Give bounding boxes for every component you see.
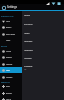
staticText: Touchpad xyxy=(24,23,33,25)
button[interactable]: Notific xyxy=(24,29,58,37)
staticText: Vibrate xyxy=(24,14,31,16)
button[interactable]: Data usage xyxy=(0,31,22,37)
button[interactable]: Settings xyxy=(0,4,64,10)
staticText: Hardware xyxy=(24,40,33,42)
staticText: More xyxy=(6,39,11,41)
staticText: Notific xyxy=(24,32,30,34)
staticText: Apps xyxy=(6,69,10,71)
button[interactable]: Storage xyxy=(0,61,22,67)
button[interactable]: Apps xyxy=(0,67,22,73)
staticText: Blueto xyxy=(6,26,12,28)
staticText: WIRELESS & NE xyxy=(1,15,14,17)
staticText: Data usage xyxy=(6,33,15,35)
staticText: Security xyxy=(6,76,13,78)
button[interactable]: Sound xyxy=(0,48,22,54)
button[interactable]: Hardware xyxy=(24,37,58,45)
staticText: Unclasse xyxy=(24,57,32,59)
button[interactable]: Wi-Fi xyxy=(0,18,22,24)
button[interactable]: Date xyxy=(0,83,22,89)
staticText: Configure xyxy=(24,65,33,67)
staticText: Set xyxy=(24,68,27,70)
staticText: Backup xyxy=(6,92,12,94)
button[interactable]: More xyxy=(0,37,22,43)
other: Status xyxy=(46,2,63,5)
button[interactable]: Security xyxy=(0,74,22,80)
staticText: Wi-Fi xyxy=(6,20,10,22)
staticText: Display xyxy=(6,56,12,58)
button[interactable]: Backup xyxy=(0,90,22,96)
staticText: Storage xyxy=(6,63,13,65)
staticText: Settings xyxy=(7,5,17,9)
button[interactable]: Configure xyxy=(24,63,58,71)
staticText: Sound xyxy=(6,50,12,52)
staticText: Date xyxy=(6,85,10,87)
other: Settings xyxy=(1,5,6,10)
button[interactable]: Display xyxy=(0,54,22,60)
staticText: About xyxy=(6,98,11,100)
button[interactable]: About xyxy=(0,96,22,100)
button[interactable]: Touchpad xyxy=(24,20,58,28)
button[interactable]: Notificatio xyxy=(24,46,58,54)
staticText: DEVICE xyxy=(1,45,7,47)
staticText: PERSONAL xyxy=(1,81,10,83)
staticText: Notificatio xyxy=(24,49,33,51)
button[interactable]: Unclasse xyxy=(24,54,58,62)
button[interactable]: Blueto xyxy=(0,24,22,30)
button[interactable]: Vibrate xyxy=(24,11,58,19)
